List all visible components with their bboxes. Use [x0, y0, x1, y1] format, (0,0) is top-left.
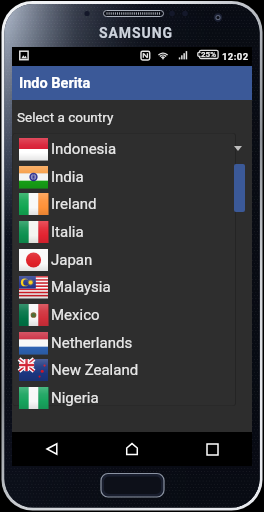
staticText: Indonesia: [51, 140, 117, 158]
button[interactable]: Mexico: [13, 301, 235, 328]
staticText: 12:02: [222, 51, 249, 62]
button[interactable]: Italia: [13, 218, 235, 245]
staticText: Malaysia: [51, 278, 111, 296]
staticText: Indo Berita: [19, 75, 91, 92]
button[interactable]: Japan: [13, 246, 235, 273]
staticText: Ireland: [51, 195, 97, 213]
button[interactable]: Ireland: [13, 190, 235, 217]
staticText: Italia: [51, 223, 84, 241]
staticText: Netherlands: [51, 334, 133, 352]
staticText: New Zealand: [51, 361, 139, 379]
button[interactable]: Back: [12, 432, 92, 466]
button[interactable]: New Zealand: [13, 356, 235, 383]
button[interactable]: Netherlands: [13, 329, 235, 356]
staticText: Nigeria: [51, 389, 99, 407]
staticText: India: [51, 168, 84, 186]
button[interactable]: Malaysia: [13, 273, 235, 300]
button[interactable]: India: [13, 163, 235, 190]
button[interactable]: Indonesia: [13, 135, 235, 162]
button[interactable]: Recents: [172, 432, 252, 466]
staticText: Select a country: [17, 109, 114, 125]
staticText: SAMSUNG: [99, 25, 173, 41]
button[interactable]: Nigeria: [13, 384, 235, 411]
staticText: Mexico: [51, 306, 100, 324]
staticText: 25%: [201, 50, 217, 59]
staticText: Japan: [51, 251, 93, 269]
button[interactable]: Home: [92, 432, 172, 466]
